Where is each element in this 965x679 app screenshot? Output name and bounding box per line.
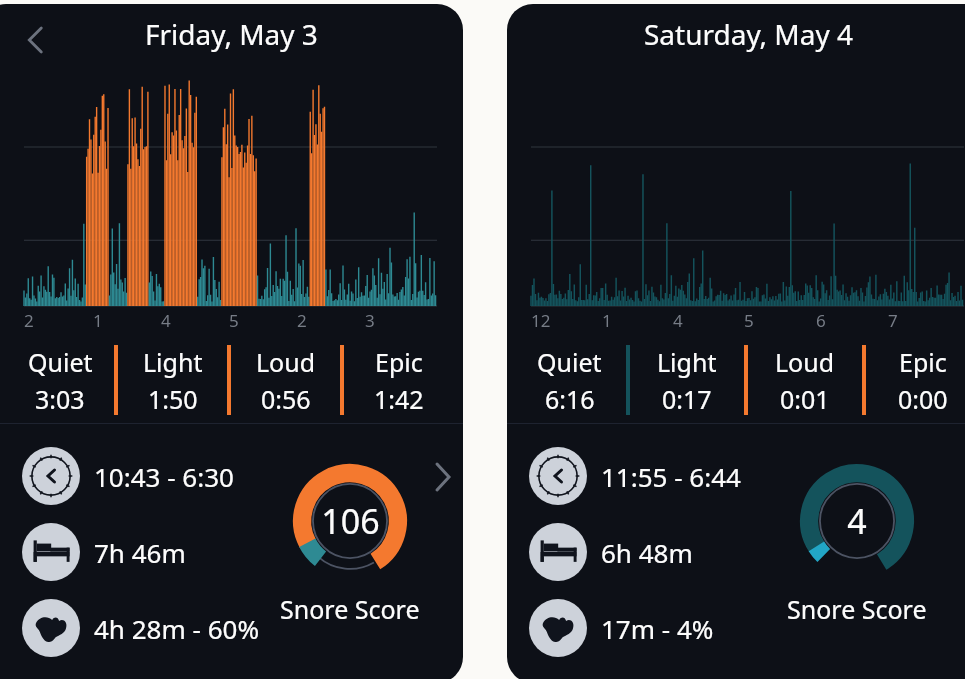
- button[interactable]: 10:43 - 6:30: [22, 447, 234, 505]
- staticText: 106: [321, 498, 380, 544]
- staticText: 0:01: [780, 382, 830, 416]
- staticText: 10:43 - 6:30: [94, 459, 234, 494]
- button[interactable]: Next: [423, 457, 463, 497]
- staticText: Epic: [899, 345, 947, 379]
- button[interactable]: 17m - 4%: [529, 599, 714, 657]
- button[interactable]: 11:55 - 6:44: [529, 447, 741, 505]
- staticText: Saturday, May 4: [644, 15, 854, 53]
- staticText: Light: [657, 345, 717, 379]
- staticText: Friday, May 3: [145, 15, 318, 53]
- staticText: 6: [816, 309, 826, 332]
- staticText: Snore Score: [280, 592, 420, 626]
- staticText: 2: [297, 309, 307, 332]
- staticText: 4: [673, 309, 683, 332]
- staticText: 6h 48m: [601, 535, 693, 570]
- button[interactable]: Back: [0, 4, 463, 679]
- staticText: Loud: [256, 345, 316, 379]
- staticText: 5: [229, 309, 239, 332]
- staticText: 0:56: [261, 382, 311, 416]
- staticText: 3: [365, 309, 375, 332]
- staticText: 17m - 4%: [601, 611, 714, 646]
- staticText: 4: [161, 309, 171, 332]
- staticText: Snore Score: [787, 592, 927, 626]
- button[interactable]: 7h 46m: [22, 523, 186, 581]
- staticText: Quiet: [537, 345, 602, 379]
- button[interactable]: 6h 48m: [529, 523, 693, 581]
- staticText: 0:00: [898, 382, 948, 416]
- staticText: Loud: [775, 345, 835, 379]
- staticText: 1: [93, 309, 103, 332]
- staticText: 3:03: [35, 382, 85, 416]
- staticText: Quiet: [28, 345, 93, 379]
- staticText: Light: [143, 345, 203, 379]
- staticText: 1: [602, 309, 612, 332]
- button[interactable]: 4h 28m - 60%: [22, 599, 259, 657]
- staticText: 1:50: [148, 382, 198, 416]
- staticText: 1:42: [374, 382, 424, 416]
- staticText: 6:16: [545, 382, 595, 416]
- staticText: 11:55 - 6:44: [601, 459, 741, 494]
- staticText: 7: [888, 309, 898, 332]
- staticText: 0:17: [662, 382, 712, 416]
- staticText: Epic: [375, 345, 423, 379]
- staticText: 4: [847, 498, 867, 544]
- staticText: 7h 46m: [94, 535, 186, 570]
- staticText: 5: [744, 309, 754, 332]
- staticText: 12: [531, 309, 551, 332]
- staticText: 4h 28m - 60%: [94, 611, 259, 646]
- button[interactable]: Saturday, May 4: [507, 4, 965, 679]
- staticText: 2: [24, 309, 34, 332]
- button[interactable]: Back: [10, 17, 56, 63]
